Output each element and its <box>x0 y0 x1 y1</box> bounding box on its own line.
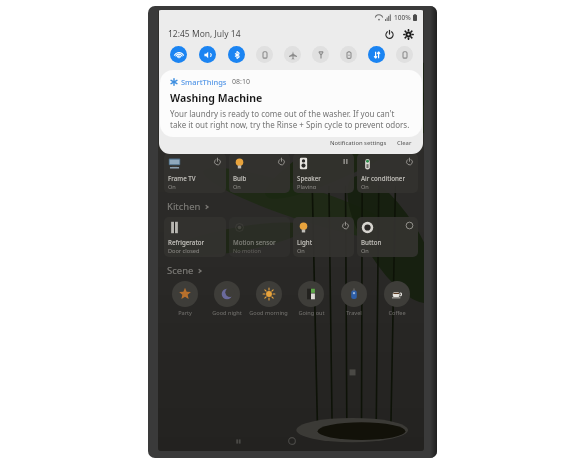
button[interactable]: Back <box>318 431 371 451</box>
button[interactable]: Power off <box>384 29 395 40</box>
button[interactable]: Speaker <box>293 153 354 193</box>
staticText: Scene <box>167 264 194 277</box>
button[interactable]: Notification settings <box>328 137 389 149</box>
staticText: On <box>168 183 176 189</box>
button[interactable]: Bluetooth <box>228 46 245 63</box>
staticText: Motion sensor <box>233 238 276 246</box>
button[interactable]: Bulb <box>229 153 290 193</box>
button[interactable]: Good morning <box>249 281 288 317</box>
staticText: Door closed <box>168 247 200 253</box>
staticText: Speaker <box>297 174 321 182</box>
staticText: Coffee <box>388 309 406 317</box>
button[interactable]: Travel <box>334 281 374 317</box>
staticText: Playing <box>297 183 317 189</box>
button[interactable]: Light <box>293 217 354 257</box>
button[interactable]: Light toggle <box>341 221 350 230</box>
staticText: Your laundry is ready to come out of the… <box>170 108 412 130</box>
button[interactable]: Settings <box>403 29 414 40</box>
staticText: Air conditioner <box>361 174 406 182</box>
button[interactable]: Coffee <box>377 281 417 317</box>
button[interactable]: Party <box>165 281 204 317</box>
button[interactable]: Speaker toggle <box>341 157 350 166</box>
staticText: Kitchen <box>167 200 201 213</box>
button[interactable]: Motion sensor <box>229 217 290 257</box>
button[interactable]: SmartThings <box>160 70 422 137</box>
button[interactable]: Power saving <box>340 46 357 63</box>
button[interactable]: Auto rotate <box>256 46 273 63</box>
staticText: Light <box>297 238 313 246</box>
staticText: Frame TV <box>168 174 196 182</box>
staticText: 08:10 <box>232 77 250 87</box>
button[interactable]: Button toggle <box>405 221 414 230</box>
staticText: Party <box>178 309 192 317</box>
staticText: On <box>233 183 241 189</box>
button[interactable]: Kitchen <box>167 200 210 213</box>
staticText: Going out <box>298 309 325 317</box>
button[interactable]: Refrigerator <box>164 217 226 257</box>
button[interactable]: Airplane mode <box>284 46 301 63</box>
staticText: Notification settings <box>330 139 387 147</box>
button[interactable]: Screen <box>396 46 413 63</box>
button[interactable]: Air conditioner <box>357 153 418 193</box>
button[interactable]: Wi-Fi <box>170 46 187 63</box>
button[interactable]: Flashlight <box>312 46 329 63</box>
staticText: SmartThings <box>181 77 227 87</box>
staticText: Clear <box>397 139 412 147</box>
staticText: Button <box>361 238 382 246</box>
staticText: 12:45 Mon, July 14 <box>168 28 241 40</box>
staticText: On <box>361 247 369 253</box>
staticText: Good night <box>212 309 242 317</box>
staticText: Travel <box>346 309 362 317</box>
staticText: On <box>361 183 369 189</box>
button[interactable]: Going out <box>291 281 331 317</box>
button[interactable]: Sound <box>199 46 216 63</box>
button[interactable]: Recents <box>212 431 265 451</box>
button[interactable]: Button <box>357 217 418 257</box>
button[interactable]: Good night <box>207 281 246 317</box>
staticText: On <box>297 247 305 253</box>
staticText: 100% <box>394 13 411 22</box>
staticText: Bulb <box>233 174 247 182</box>
button[interactable]: Bulb toggle <box>277 157 286 166</box>
button[interactable]: Air conditioner toggle <box>405 157 414 166</box>
button[interactable]: Mobile data <box>368 46 385 63</box>
button[interactable]: Frame TV <box>164 153 226 193</box>
button[interactable]: Frame TV toggle <box>213 157 222 166</box>
button[interactable]: Clear <box>395 137 414 149</box>
button[interactable]: Home <box>265 431 318 451</box>
button[interactable]: Scene <box>167 264 203 277</box>
staticText: Refrigerator <box>168 238 205 246</box>
staticText: Washing Machine <box>170 91 263 105</box>
staticText: Good morning <box>249 309 288 317</box>
staticText: No motion <box>233 247 262 253</box>
